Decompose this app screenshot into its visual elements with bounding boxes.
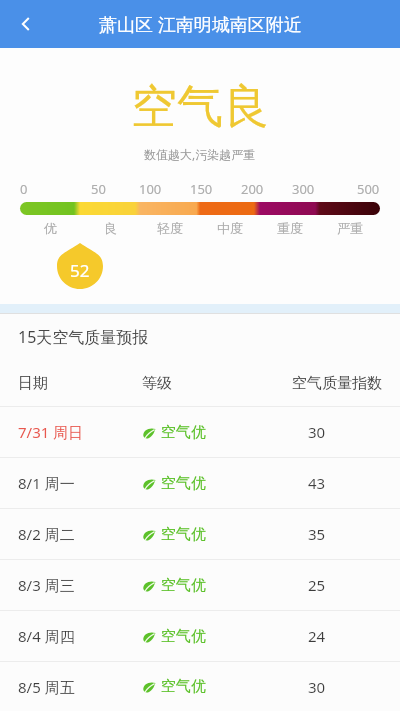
staticText: 300 [292, 180, 315, 198]
staticText: 空气优 [161, 677, 206, 696]
staticText: 150 [190, 180, 213, 198]
staticText: 严重 [337, 220, 363, 236]
button[interactable]: 8/5 周五 [0, 662, 400, 711]
staticText: 8/4 周四 [18, 626, 75, 646]
staticText: 15天空气质量预报 [18, 326, 149, 348]
staticText: 轻度 [157, 220, 183, 236]
staticText: 中度 [217, 220, 243, 236]
staticText: 空气优 [161, 627, 206, 646]
staticText: 8/1 周一 [18, 473, 75, 493]
button[interactable]: 8/3 周三 [0, 560, 400, 611]
staticText: 等级 [142, 374, 172, 393]
staticText: 良 [104, 220, 117, 236]
button[interactable]: 7/31 周日 [0, 407, 400, 458]
staticText: 8/5 周五 [18, 677, 75, 697]
staticText: 空气优 [161, 576, 206, 595]
staticText: 0 [20, 180, 28, 198]
staticText: 优 [44, 220, 57, 236]
staticText: 43 [308, 473, 326, 493]
staticText: 50 [91, 180, 106, 198]
staticText: 日期 [18, 374, 48, 393]
staticText: 8/2 周二 [18, 524, 75, 544]
staticText: 重度 [277, 220, 303, 236]
staticText: 100 [139, 180, 162, 198]
button[interactable]: 8/1 周一 [0, 458, 400, 509]
staticText: 数值越大,污染越严重 [144, 146, 256, 162]
staticText: 30 [308, 677, 326, 697]
button[interactable]: 8/4 周四 [0, 611, 400, 662]
staticText: 空气优 [161, 423, 206, 442]
staticText: 500 [357, 180, 380, 198]
button[interactable]: 8/2 周二 [0, 509, 400, 560]
staticText: 35 [308, 524, 326, 544]
button[interactable]: Back [6, 4, 46, 44]
staticText: 25 [308, 575, 326, 595]
staticText: 200 [241, 180, 264, 198]
staticText: 空气良 [131, 78, 269, 136]
staticText: 萧山区 江南明城南区附近 [99, 12, 302, 37]
staticText: 8/3 周三 [18, 575, 75, 595]
staticText: 52 [70, 259, 90, 282]
staticText: 空气质量指数 [292, 374, 382, 393]
staticText: 空气优 [161, 525, 206, 544]
staticText: 7/31 周日 [18, 422, 84, 442]
staticText: 30 [308, 422, 326, 442]
staticText: 24 [308, 626, 326, 646]
staticText: 空气优 [161, 474, 206, 493]
